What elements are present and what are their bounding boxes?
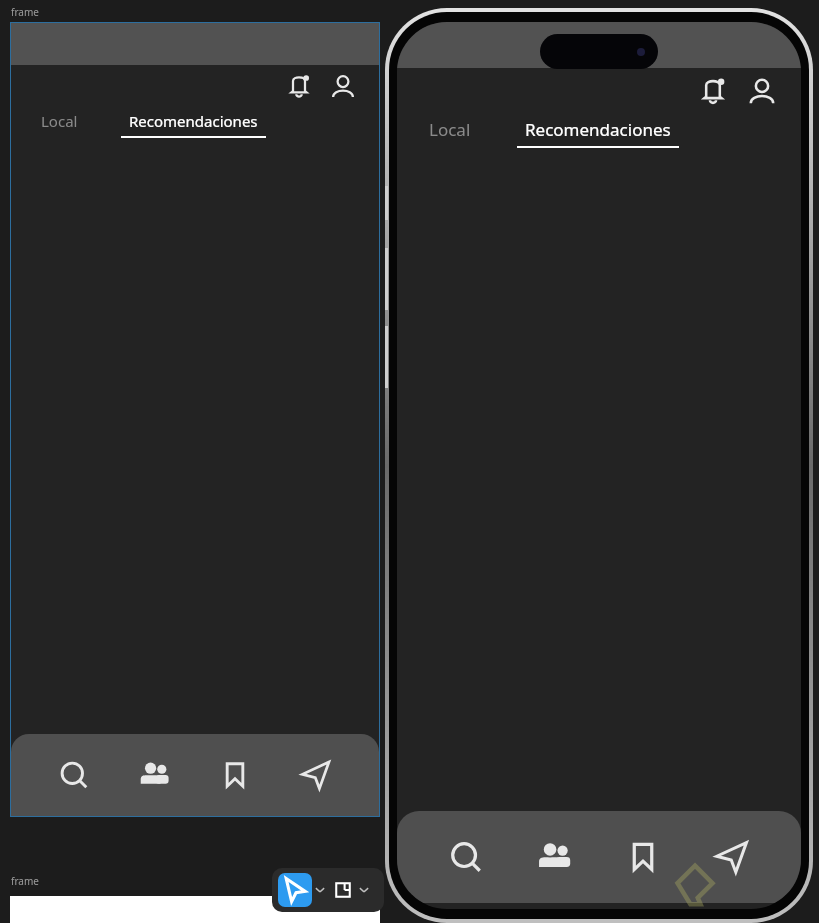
button[interactable]: Más herramientas de selección <box>312 882 328 898</box>
button[interactable]: Buscar <box>447 838 485 876</box>
button[interactable]: Mover <box>278 873 312 907</box>
staticText: Local <box>41 111 78 131</box>
button[interactable]: Notificaciones <box>284 72 314 102</box>
button[interactable]: Perfil <box>745 75 779 109</box>
button[interactable]: Marco <box>330 877 356 903</box>
button[interactable]: Guardados <box>624 838 662 876</box>
button[interactable]: Local <box>425 116 475 143</box>
button[interactable]: Perfil <box>328 72 358 102</box>
button[interactable]: Buscar <box>57 758 91 792</box>
staticText: Recomendaciones <box>129 111 258 131</box>
button[interactable]: Local <box>37 109 82 133</box>
staticText: frame <box>11 874 39 888</box>
button[interactable]: Enviar <box>713 838 751 876</box>
staticText: Recomendaciones <box>525 118 671 141</box>
button[interactable]: Recomendaciones <box>121 109 266 138</box>
button[interactable]: Más herramientas de marco <box>356 882 372 898</box>
button[interactable]: Notificaciones <box>696 75 730 109</box>
staticText: frame <box>11 5 39 19</box>
button[interactable]: Enviar <box>299 758 333 792</box>
button[interactable]: Amigos <box>138 758 172 792</box>
button[interactable]: Guardados <box>218 758 252 792</box>
button[interactable]: Amigos <box>536 838 574 876</box>
button[interactable]: Recomendaciones <box>517 116 679 148</box>
staticText: Local <box>429 118 471 141</box>
